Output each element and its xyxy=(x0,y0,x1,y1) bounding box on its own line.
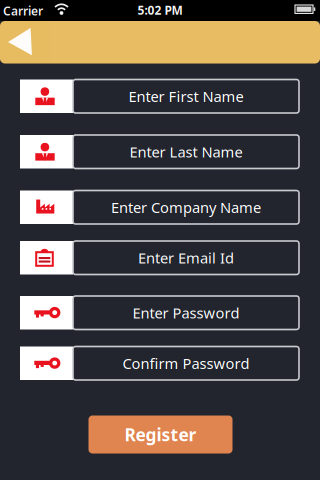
button[interactable]: Enter Password xyxy=(20,296,299,329)
button[interactable]: Enter First Name xyxy=(20,79,299,113)
button[interactable]: Register xyxy=(88,415,232,453)
staticText: Enter Email Id xyxy=(138,248,234,267)
staticText: Register xyxy=(124,423,196,446)
staticText: Confirm Password xyxy=(122,353,249,373)
button[interactable]: Enter Email Id xyxy=(20,241,299,274)
staticText: Enter First Name xyxy=(128,86,243,106)
staticText: 5:02 PM xyxy=(137,2,182,18)
button[interactable]: Back xyxy=(0,21,50,63)
button[interactable]: Enter Last Name xyxy=(20,135,299,168)
button[interactable]: Enter Company Name xyxy=(20,190,299,224)
button[interactable]: Confirm Password xyxy=(20,346,299,380)
staticText: Enter Last Name xyxy=(129,142,242,161)
staticText: Carrier xyxy=(3,3,43,19)
staticText: Enter Password xyxy=(132,303,239,322)
staticText: Enter Company Name xyxy=(111,197,261,217)
